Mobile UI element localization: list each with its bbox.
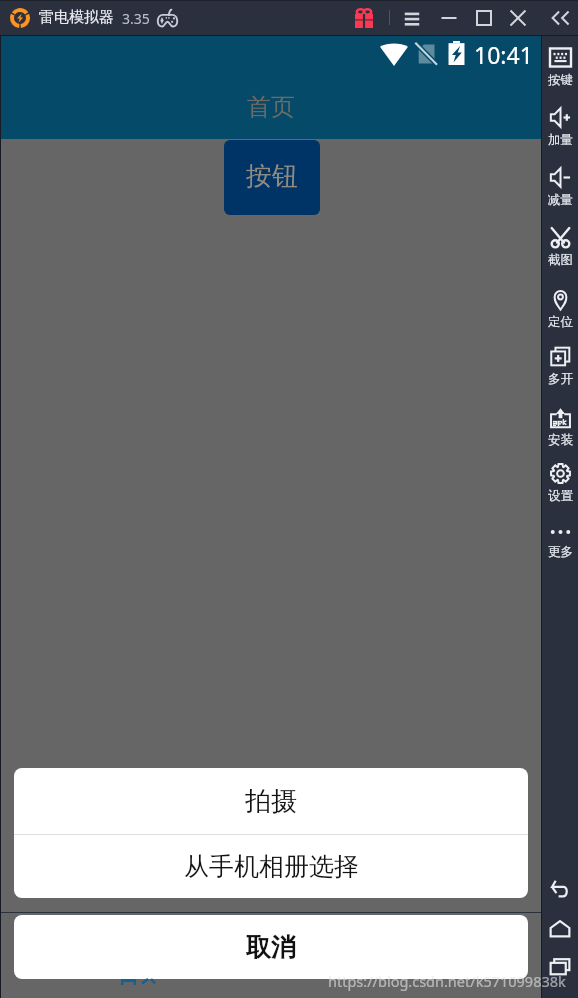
button[interactable]: Maximize bbox=[471, 6, 497, 30]
staticText: 从手机相册选择 bbox=[184, 851, 359, 882]
staticText: 取消 bbox=[246, 932, 296, 963]
button[interactable]: 更多 bbox=[542, 519, 578, 560]
button[interactable]: 多开 bbox=[542, 346, 578, 387]
staticText: 定位 bbox=[548, 314, 573, 330]
button[interactable]: 加量 bbox=[542, 107, 578, 148]
staticText: 雷电模拟器 bbox=[39, 8, 114, 27]
button[interactable]: 截图 bbox=[542, 227, 578, 268]
staticText: 减量 bbox=[548, 192, 573, 208]
button[interactable]: 定位 bbox=[542, 289, 578, 330]
staticText: 安装 bbox=[548, 432, 573, 448]
staticText: 多开 bbox=[548, 371, 573, 387]
staticText: 首页 bbox=[247, 92, 295, 122]
button[interactable]: 拍摄 bbox=[14, 768, 528, 834]
button[interactable]: 安装 bbox=[542, 407, 578, 448]
staticText: 更多 bbox=[548, 544, 573, 560]
button[interactable]: Collapse sidebar bbox=[549, 5, 573, 31]
staticText: 10:41 bbox=[474, 39, 533, 70]
button[interactable]: Minimize bbox=[436, 6, 462, 30]
button[interactable]: Close bbox=[505, 6, 531, 30]
button[interactable]: Back bbox=[542, 876, 578, 902]
button[interactable]: 按钮 bbox=[224, 140, 320, 215]
button[interactable]: 减量 bbox=[542, 167, 578, 208]
staticText: 设置 bbox=[548, 488, 573, 504]
staticText: 3.35 bbox=[122, 9, 150, 28]
staticText: 按键 bbox=[548, 72, 573, 88]
button[interactable]: Menu bbox=[399, 6, 425, 30]
button[interactable]: 从手机相册选择 bbox=[14, 835, 528, 898]
staticText: 拍摄 bbox=[245, 785, 297, 818]
staticText: https://blog.csdn.net/k571099838k bbox=[328, 971, 566, 991]
button[interactable]: Home bbox=[542, 916, 578, 942]
staticText: 加量 bbox=[548, 132, 573, 148]
button[interactable]: 取消 bbox=[14, 915, 528, 979]
staticText: 按钮 bbox=[246, 160, 298, 193]
staticText: 截图 bbox=[548, 252, 573, 268]
button[interactable]: 按键 bbox=[542, 47, 578, 88]
button[interactable]: Gift bbox=[352, 4, 376, 32]
button[interactable]: 设置 bbox=[542, 463, 578, 504]
button[interactable]: Recents bbox=[542, 954, 578, 980]
